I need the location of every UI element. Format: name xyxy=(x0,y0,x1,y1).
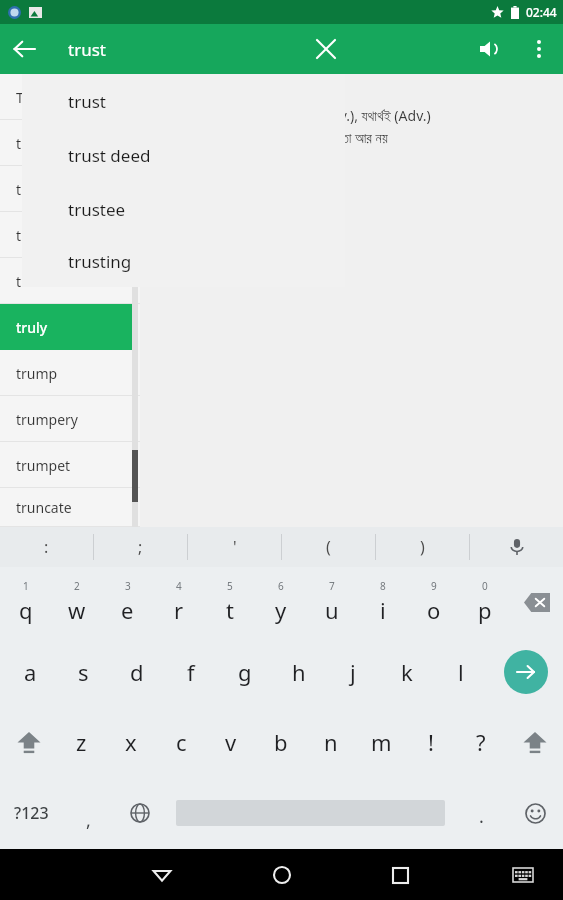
button[interactable]: l xyxy=(434,637,488,707)
button[interactable]: 2 xyxy=(51,567,102,637)
staticText: 5 xyxy=(227,579,233,593)
button[interactable]: , xyxy=(62,777,114,849)
button[interactable]: 8 xyxy=(357,567,408,637)
button[interactable]: Voice input xyxy=(470,527,563,567)
staticText: w xyxy=(68,595,86,625)
button[interactable]: tru xyxy=(0,212,140,258)
button[interactable]: Enter xyxy=(488,637,563,707)
button[interactable]: truncate xyxy=(0,488,140,527)
button[interactable]: Shift xyxy=(506,707,563,777)
staticText: ? xyxy=(476,727,486,757)
button[interactable]: Shift xyxy=(0,707,57,777)
button[interactable]: x xyxy=(106,707,156,777)
button[interactable]: More options xyxy=(515,25,563,73)
button[interactable]: tru xyxy=(0,166,140,212)
button[interactable]: truly xyxy=(0,304,140,350)
button[interactable]: trust deed xyxy=(22,128,345,182)
button[interactable]: ' xyxy=(188,527,281,567)
button[interactable]: Switch keyboard xyxy=(499,851,547,899)
button[interactable]: trumpet xyxy=(0,442,140,488)
staticText: g xyxy=(238,657,252,687)
button[interactable]: trumpery xyxy=(0,396,140,442)
button[interactable]: 5 xyxy=(204,567,255,637)
button[interactable]: b xyxy=(256,707,306,777)
button[interactable]: 0 xyxy=(459,567,510,637)
staticText: d xyxy=(130,657,144,687)
button[interactable]: Emoji xyxy=(507,777,563,849)
staticText: k xyxy=(401,657,413,687)
button[interactable]: Pronounce xyxy=(465,25,513,73)
staticText: f xyxy=(187,657,195,687)
button[interactable]: ; xyxy=(94,527,187,567)
staticText: t xyxy=(226,595,234,625)
staticText: ' xyxy=(233,536,237,558)
button[interactable]: h xyxy=(272,637,326,707)
button[interactable]: 9 xyxy=(408,567,459,637)
button[interactable]: ? xyxy=(456,707,506,777)
staticText: = সত্যই (Adv.), নিশ্চয়ই (Adv.), যথার্থই… xyxy=(195,106,431,125)
staticText: i xyxy=(380,595,386,625)
button[interactable]: tru xyxy=(0,120,140,166)
staticText: s xyxy=(78,657,89,687)
button[interactable]: T xyxy=(0,74,140,120)
button[interactable]: d xyxy=(110,637,164,707)
button[interactable]: . xyxy=(455,777,507,849)
button[interactable]: trust xyxy=(22,74,345,128)
staticText: trust xyxy=(68,90,106,113)
button[interactable]: f xyxy=(164,637,218,707)
staticText: 9 xyxy=(431,579,437,593)
staticText: ( xyxy=(326,536,331,558)
staticText: trust xyxy=(68,38,106,61)
staticText: l xyxy=(458,657,464,687)
button[interactable]: trump xyxy=(0,350,140,396)
staticText: r xyxy=(174,595,184,625)
button[interactable]: 6 xyxy=(255,567,306,637)
button[interactable]: Backspace xyxy=(510,567,563,637)
button[interactable]: Home xyxy=(258,851,306,899)
button[interactable]: k xyxy=(380,637,434,707)
button[interactable]: ! xyxy=(406,707,456,777)
staticText: 6 xyxy=(278,579,284,593)
button[interactable]: ?123 xyxy=(0,777,62,849)
button[interactable]: g xyxy=(218,637,272,707)
staticText: y xyxy=(275,595,287,625)
button[interactable]: trusting xyxy=(22,236,345,287)
staticText: u xyxy=(325,595,339,625)
staticText: h xyxy=(292,657,306,687)
staticText: : xyxy=(44,536,49,558)
button[interactable]: ( xyxy=(282,527,375,567)
button[interactable]: ) xyxy=(376,527,469,567)
staticText: 4 xyxy=(176,579,182,593)
staticText: trusting xyxy=(68,250,132,273)
button[interactable]: Space xyxy=(166,777,455,849)
staticText: ; xyxy=(138,536,143,558)
button[interactable]: j xyxy=(326,637,380,707)
staticText: 7 xyxy=(329,579,335,593)
staticText: z xyxy=(76,727,87,757)
button[interactable]: Change language xyxy=(114,777,166,849)
button[interactable]: z xyxy=(57,707,106,777)
button[interactable]: Clear xyxy=(302,25,350,73)
button[interactable]: 1 xyxy=(0,567,51,637)
staticText: ! xyxy=(428,727,434,757)
staticText: e xyxy=(121,595,134,625)
button[interactable]: m xyxy=(356,707,406,777)
button[interactable]: 7 xyxy=(306,567,357,637)
button[interactable]: 3 xyxy=(102,567,153,637)
button[interactable]: Back xyxy=(138,851,186,899)
button[interactable]: c xyxy=(156,707,206,777)
button[interactable]: trustee xyxy=(22,182,345,236)
button[interactable]: a xyxy=(4,637,57,707)
button[interactable]: : xyxy=(0,527,93,567)
button[interactable]: n xyxy=(306,707,356,777)
staticText: tru xyxy=(16,134,36,153)
button[interactable]: 4 xyxy=(153,567,204,637)
staticText: a xyxy=(24,657,37,687)
button[interactable]: s xyxy=(57,637,110,707)
button[interactable]: v xyxy=(206,707,256,777)
button[interactable]: Recent apps xyxy=(376,851,424,899)
staticText: b xyxy=(274,727,288,757)
button[interactable]: trume xyxy=(0,258,140,304)
button[interactable]: Back xyxy=(0,25,48,73)
